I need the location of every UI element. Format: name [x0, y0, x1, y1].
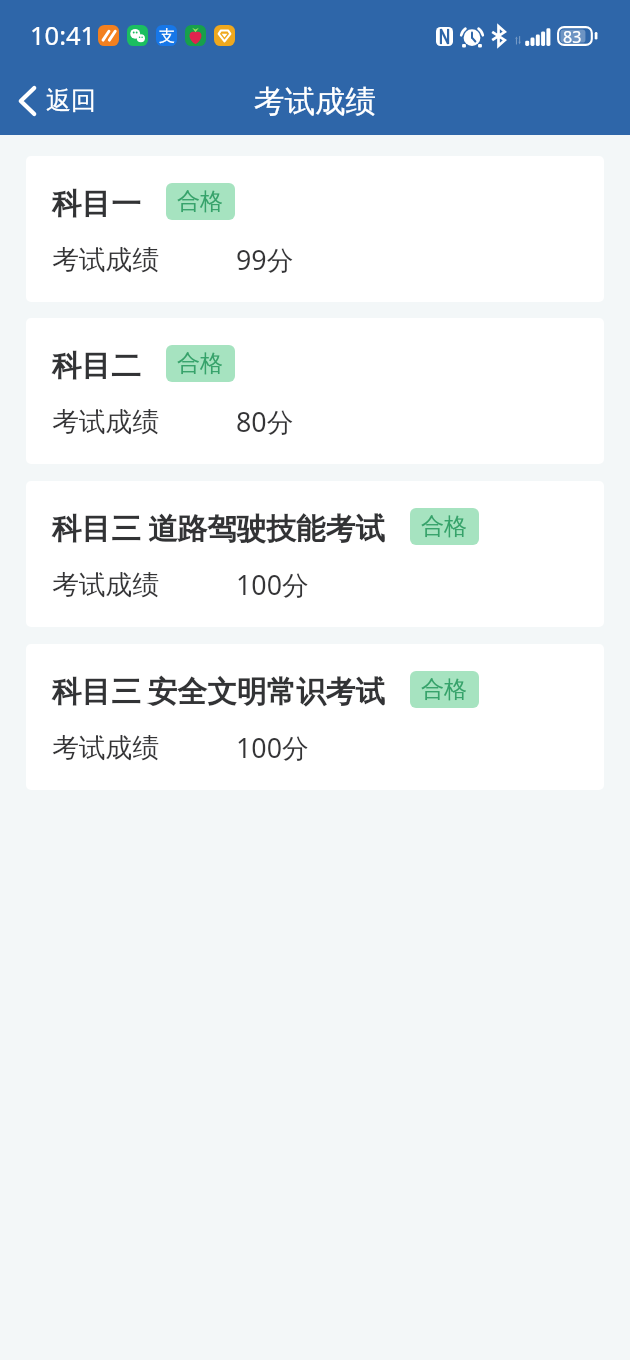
button[interactable]: 科目三	[26, 481, 604, 627]
staticText: 合格	[177, 187, 223, 216]
staticText: 科目三	[52, 510, 141, 547]
button[interactable]: 科目三	[26, 644, 604, 790]
staticText: 99分	[236, 241, 294, 278]
staticText: 支	[159, 26, 175, 46]
staticText: 科目一	[52, 185, 141, 222]
staticText: 考试成绩	[52, 568, 160, 602]
button[interactable]: 科目一	[26, 156, 604, 302]
other: Back	[20, 88, 35, 114]
staticText: 返回	[46, 85, 96, 116]
staticText: 考试成绩	[254, 83, 376, 121]
staticText: 科目二	[52, 347, 141, 384]
staticText: 合格	[421, 512, 467, 541]
staticText: 道路驾驶技能考试	[148, 510, 385, 547]
staticText: 考试成绩	[52, 731, 160, 765]
staticText: 考试成绩	[52, 243, 160, 277]
staticText: 100分	[236, 729, 309, 766]
staticText: 10:41	[30, 18, 96, 53]
staticText: 合格	[177, 349, 223, 378]
button[interactable]: Back	[0, 75, 110, 126]
staticText: 80分	[236, 403, 294, 440]
staticText: 100分	[236, 566, 309, 603]
staticText: 83	[563, 26, 582, 46]
button[interactable]: 科目二	[26, 318, 604, 464]
staticText: 科目三	[52, 673, 141, 710]
staticText: 合格	[421, 675, 467, 704]
staticText: 考试成绩	[52, 405, 160, 439]
staticText: 安全文明常识考试	[148, 673, 385, 710]
